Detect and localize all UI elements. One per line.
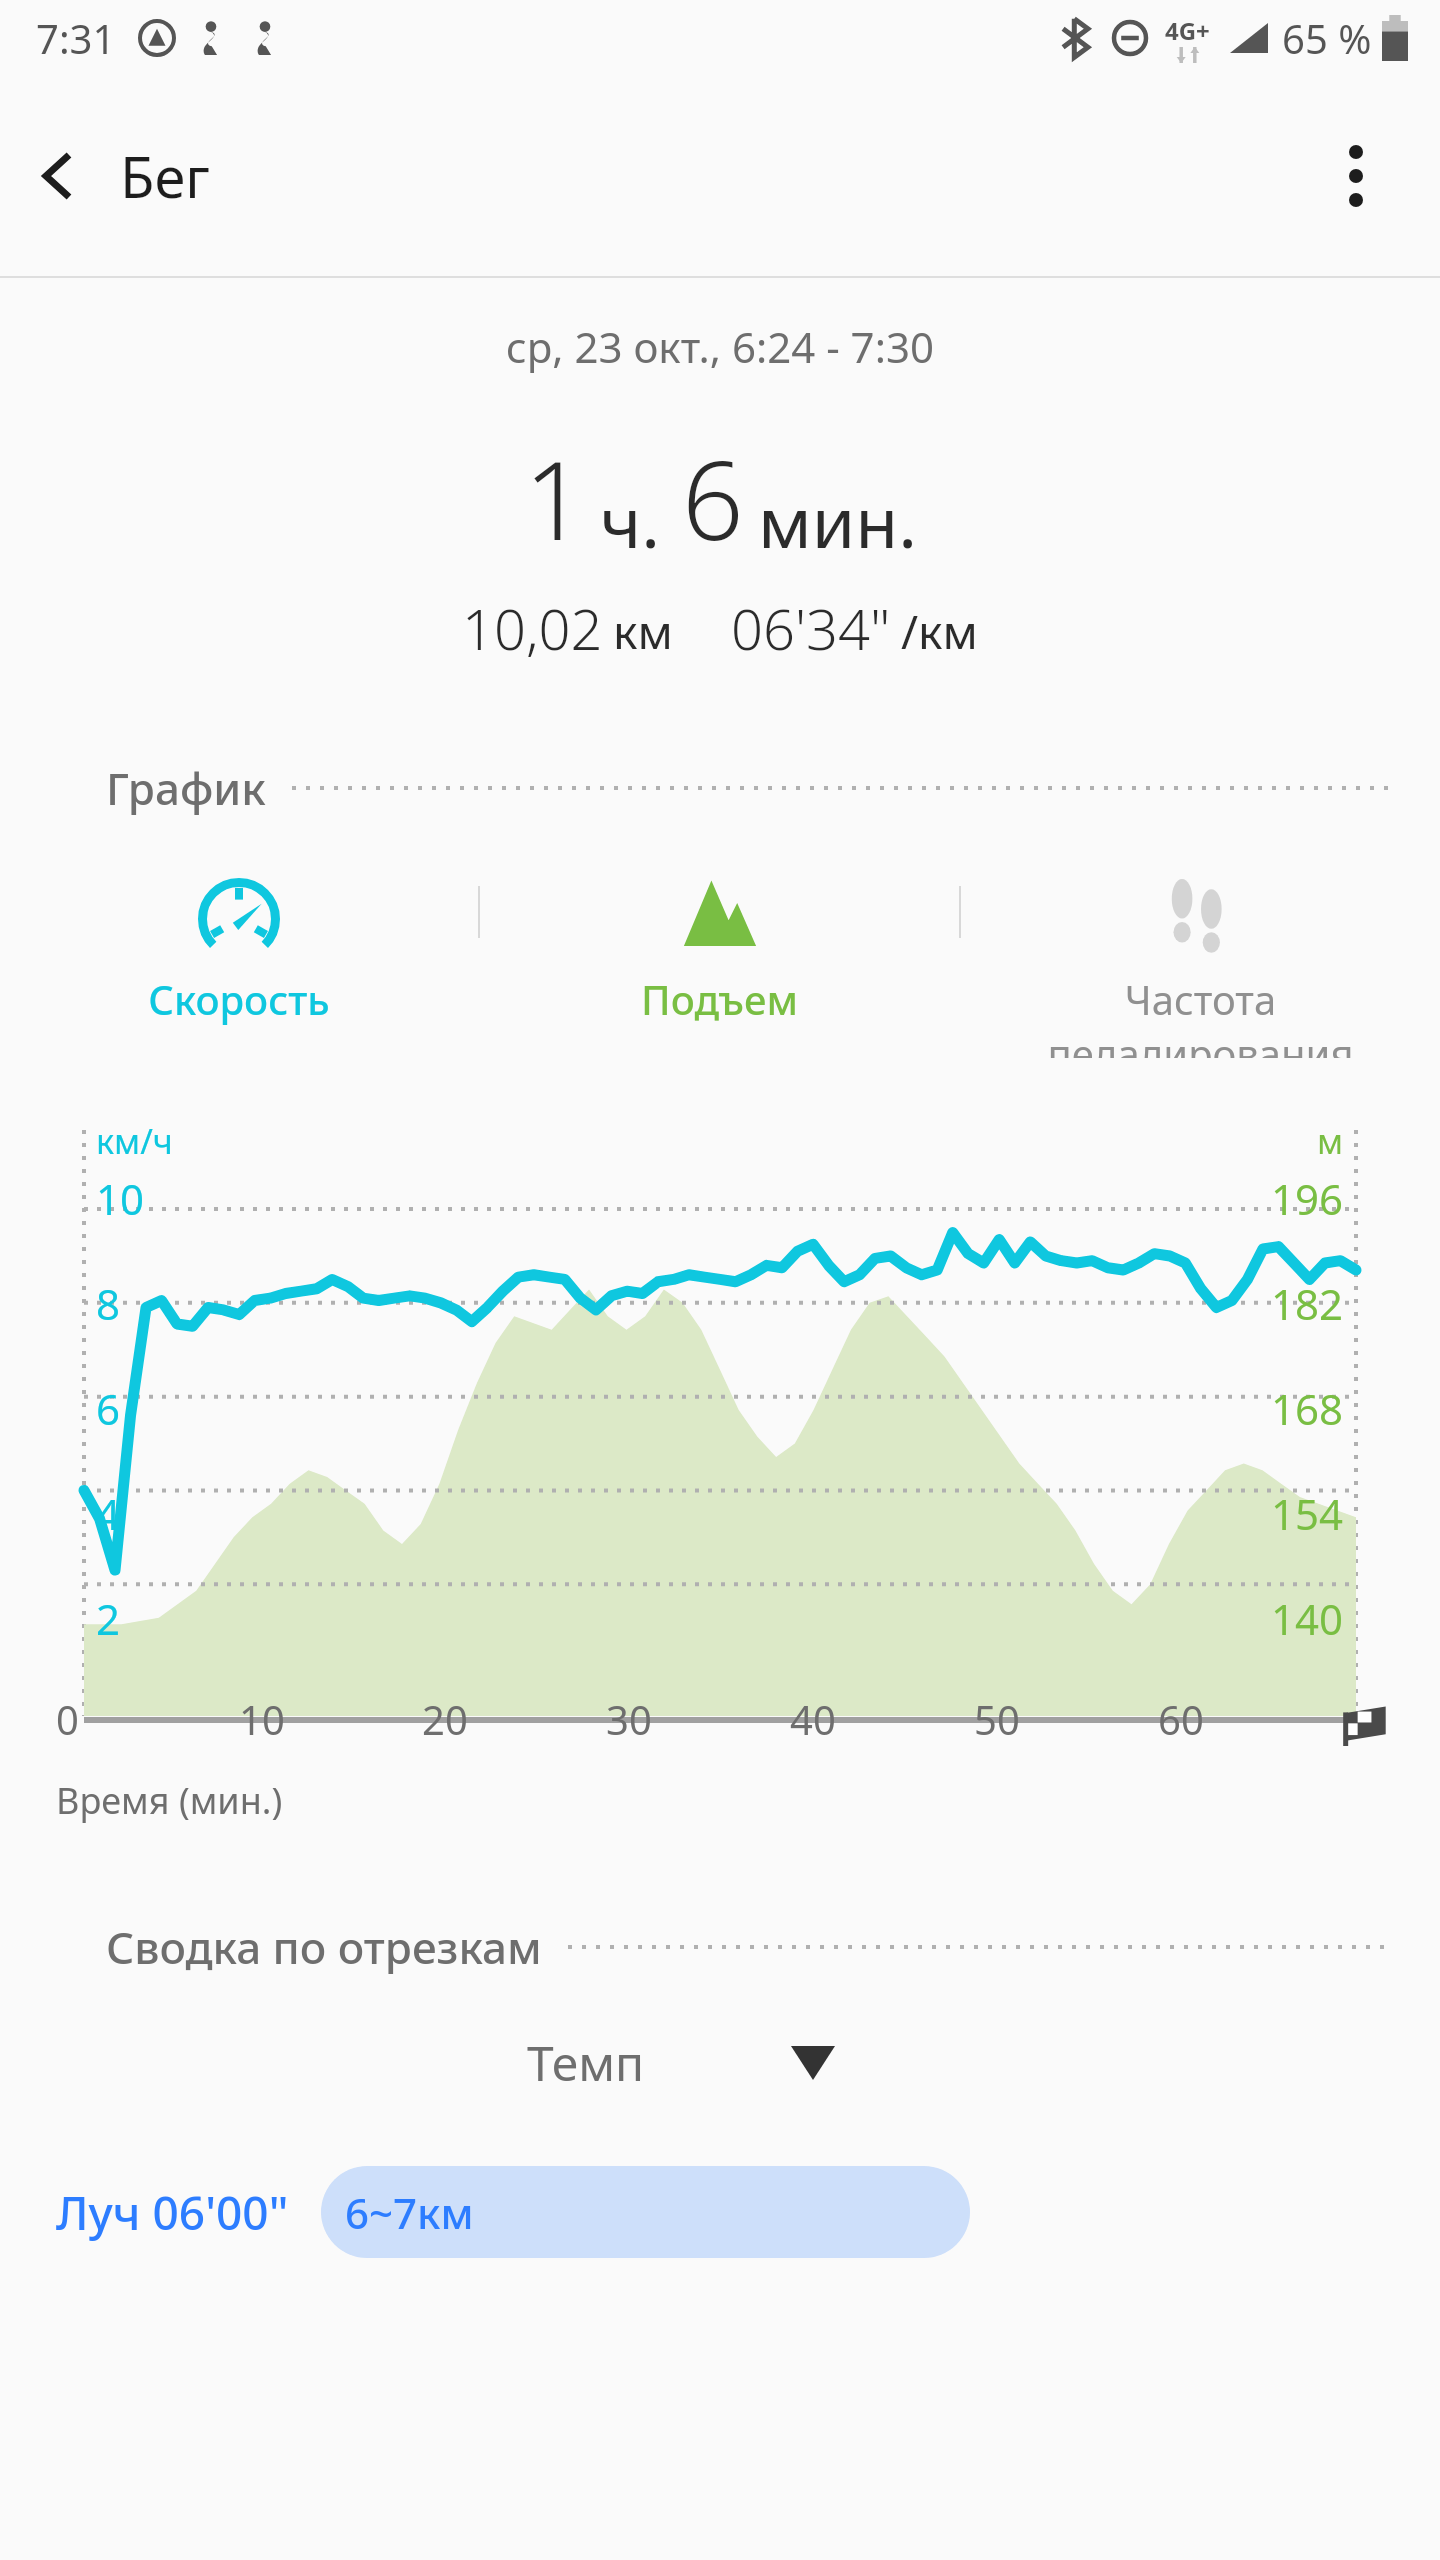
- staticText: Частота педалирования: [1047, 972, 1354, 1058]
- staticText: 0: [56, 1692, 79, 1746]
- staticText: 140: [1271, 1590, 1344, 1647]
- staticText: 168: [1271, 1380, 1344, 1437]
- staticText: ср, 23 окт., 6:24 - 7:30: [506, 318, 934, 375]
- staticText: 60: [1158, 1692, 1204, 1746]
- staticText: 4G+: [1165, 14, 1210, 47]
- staticText: мин.: [758, 473, 917, 568]
- staticText: ч.: [600, 473, 660, 568]
- staticText: м: [1317, 1118, 1344, 1164]
- staticText: /км: [901, 600, 978, 663]
- button[interactable]: Темп: [527, 2030, 835, 2095]
- staticText: Подъем: [641, 972, 798, 1026]
- button[interactable]: Скорость: [0, 858, 478, 1058]
- staticText: 182: [1271, 1275, 1344, 1332]
- staticText: 154: [1271, 1485, 1344, 1542]
- staticText: Сводка по отрезкам: [106, 1917, 542, 1977]
- button[interactable]: Подъем: [480, 858, 959, 1058]
- staticText: 65 %: [1282, 11, 1372, 65]
- button[interactable]: Ещё: [1296, 116, 1416, 236]
- staticText: 196: [1271, 1170, 1344, 1227]
- staticText: Скорость: [148, 972, 330, 1026]
- button[interactable]: Частота педалирования: [961, 858, 1440, 1058]
- staticText: 6: [682, 425, 744, 572]
- staticText: 10,02: [462, 590, 603, 666]
- staticText: Темп: [527, 2030, 645, 2095]
- staticText: 1: [524, 425, 586, 572]
- button[interactable]: Луч 06'00": [0, 2157, 1440, 2267]
- staticText: 20: [422, 1692, 468, 1746]
- staticText: 2: [96, 1590, 121, 1647]
- staticText: 7:31: [36, 11, 116, 65]
- staticText: Бег: [120, 138, 210, 214]
- staticText: 4: [96, 1485, 121, 1542]
- staticText: 50: [974, 1692, 1020, 1746]
- button[interactable]: Назад: [0, 116, 120, 236]
- staticText: Время (мин.): [56, 1776, 283, 1825]
- staticText: км: [613, 600, 673, 663]
- staticText: 40: [790, 1692, 836, 1746]
- staticText: 6~7км: [345, 2184, 474, 2241]
- staticText: 10: [239, 1692, 285, 1746]
- staticText: 8: [96, 1275, 121, 1332]
- staticText: График: [106, 758, 266, 818]
- staticText: 06'34": [731, 590, 891, 666]
- staticText: км/ч: [96, 1118, 173, 1164]
- staticText: 6: [96, 1380, 121, 1437]
- staticText: 30: [606, 1692, 652, 1746]
- staticText: 10: [96, 1170, 145, 1227]
- staticText: Луч 06'00": [56, 2181, 289, 2244]
